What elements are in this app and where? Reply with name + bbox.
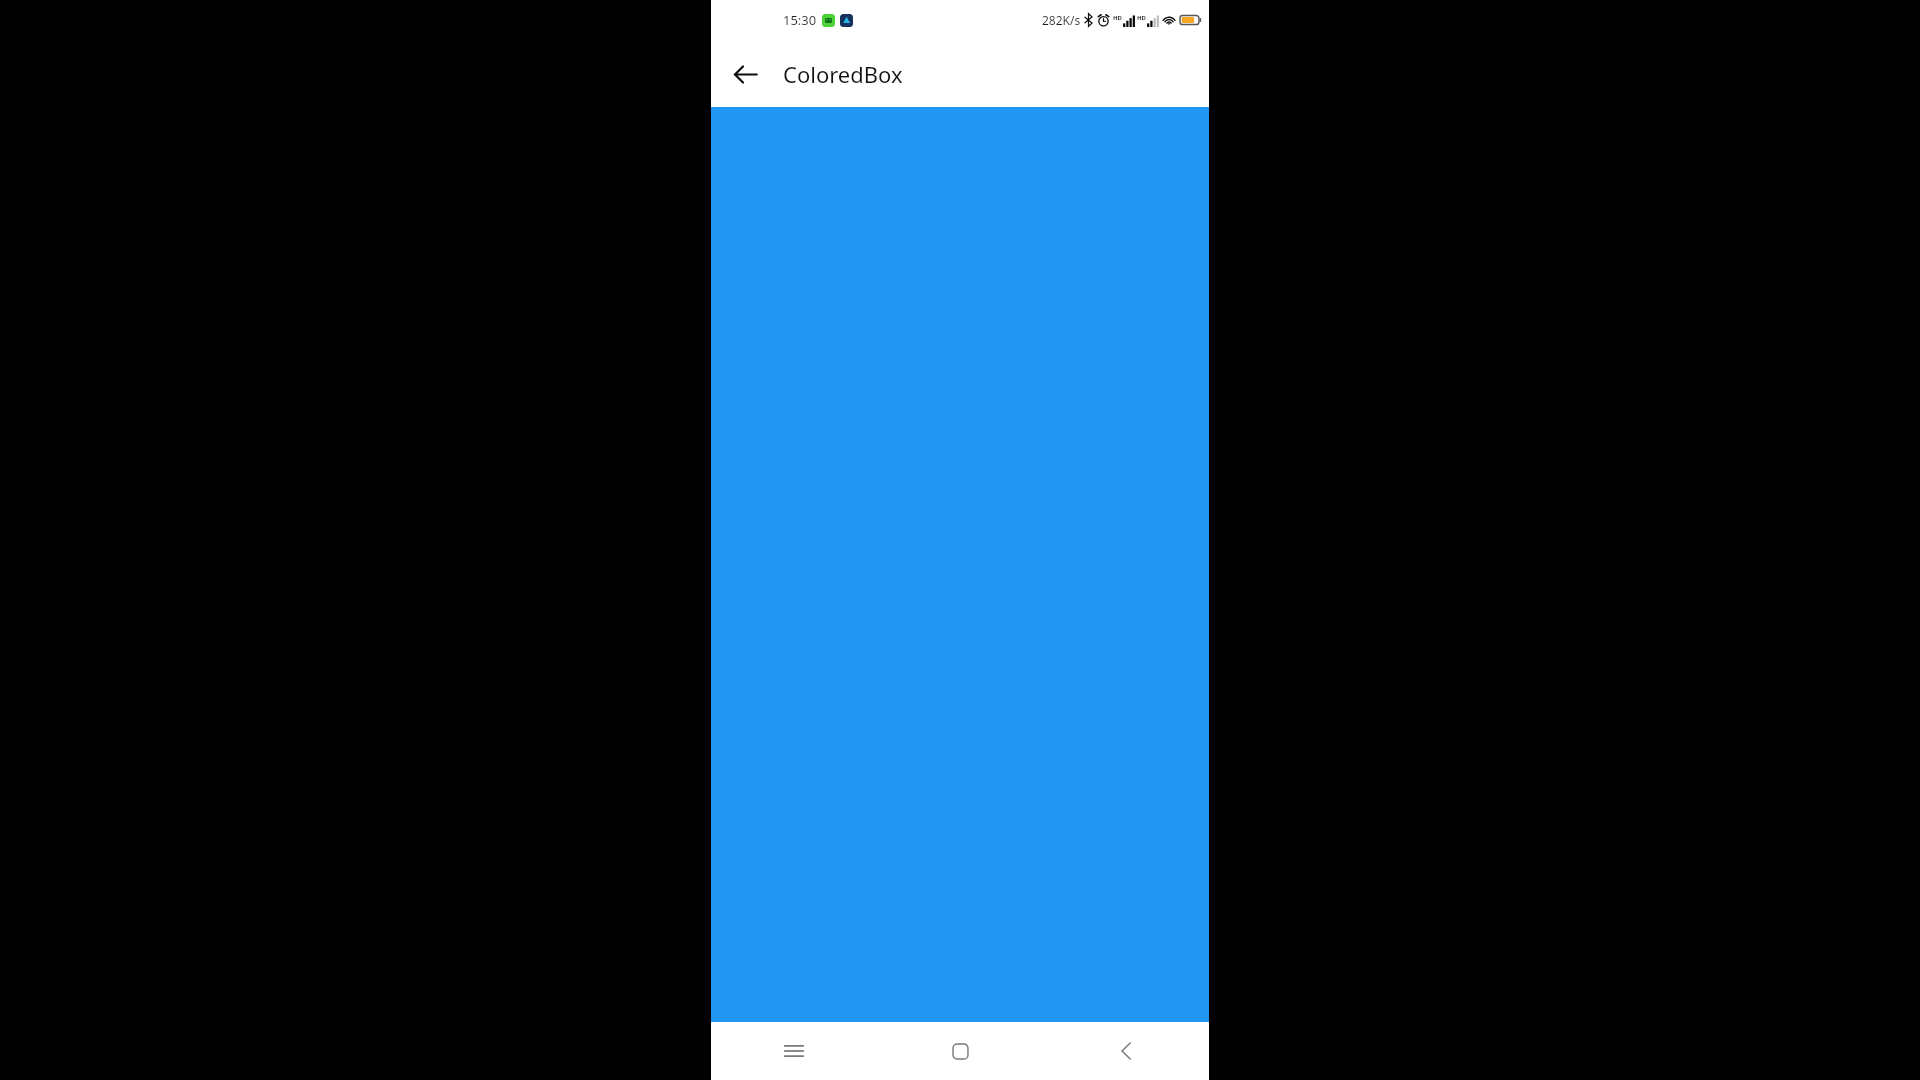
staticText: ColoredBox [783,59,903,89]
button[interactable]: Back [1043,1022,1209,1080]
staticText: 282K/s [1042,12,1081,28]
staticText: HD [1137,14,1146,22]
button[interactable]: Recent apps [711,1022,877,1080]
button[interactable]: Back [721,50,769,98]
staticText: HD [1113,14,1122,22]
staticText: 15:30 [783,11,817,29]
button[interactable]: Home [877,1022,1043,1080]
